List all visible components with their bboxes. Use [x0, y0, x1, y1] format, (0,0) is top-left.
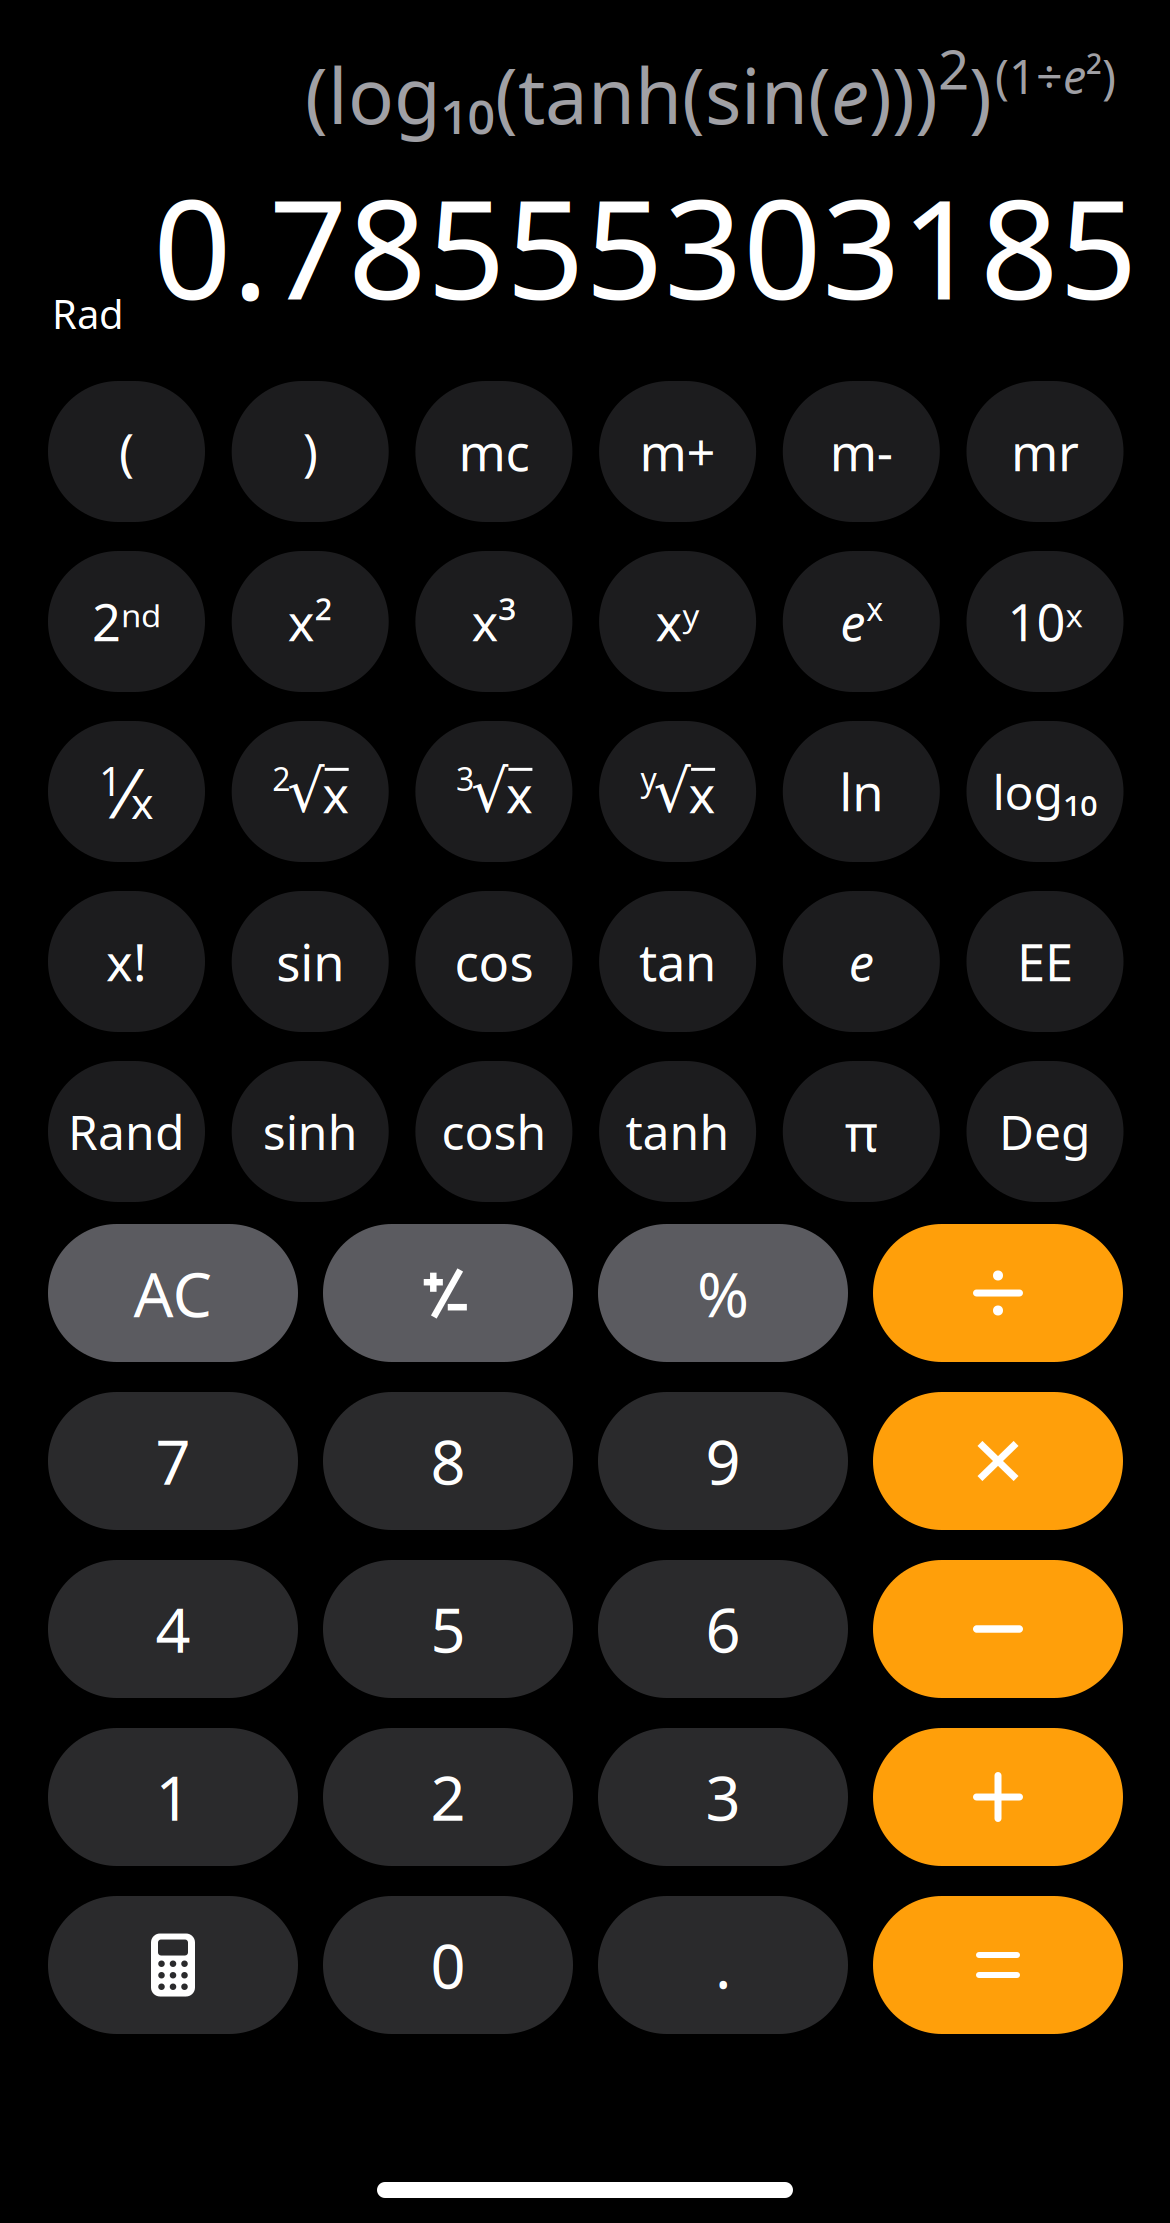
- button[interactable]: mc: [415, 381, 572, 522]
- staticText: Rand: [68, 1100, 185, 1163]
- staticText: cosh: [441, 1100, 546, 1163]
- staticText: e: [849, 928, 874, 995]
- staticText: xʸ: [656, 588, 700, 655]
- button[interactable]: m+: [599, 381, 756, 522]
- button[interactable]: 6: [598, 1560, 848, 1698]
- staticText: m-: [830, 418, 893, 485]
- button[interactable]: mr: [966, 381, 1123, 522]
- button[interactable]: 4: [48, 1560, 298, 1698]
- button[interactable]: Equals: [873, 1896, 1123, 2034]
- staticText: ))): [869, 44, 938, 145]
- staticText: cos: [454, 928, 533, 995]
- staticText: 5: [430, 1588, 465, 1670]
- button[interactable]: x!: [48, 891, 205, 1032]
- staticText: m+: [640, 418, 716, 485]
- staticText: %: [697, 1251, 749, 1335]
- staticText: ²): [1086, 45, 1116, 107]
- button[interactable]: tan: [599, 891, 756, 1032]
- staticText: (1÷: [995, 45, 1063, 107]
- button[interactable]: Multiply: [873, 1392, 1123, 1530]
- staticText: 3: [456, 757, 474, 800]
- staticText: 1: [99, 754, 122, 807]
- button[interactable]: e: [783, 891, 940, 1032]
- button[interactable]: 1: [48, 1728, 298, 1866]
- button[interactable]: ): [232, 381, 389, 522]
- staticText: sinh: [263, 1100, 358, 1163]
- button[interactable]: 2: [232, 721, 389, 862]
- staticText: e: [1063, 45, 1086, 107]
- staticText: x: [689, 760, 716, 827]
- staticText: Rad: [52, 287, 124, 340]
- staticText: y: [641, 757, 657, 800]
- button[interactable]: 3: [415, 721, 572, 862]
- staticText: 10ˣ: [1007, 588, 1082, 655]
- button[interactable]: log₁₀: [966, 721, 1123, 862]
- button[interactable]: 0: [323, 1896, 573, 2034]
- button[interactable]: (: [48, 381, 205, 522]
- button[interactable]: EE: [966, 891, 1123, 1032]
- button[interactable]: 9: [598, 1392, 848, 1530]
- button[interactable]: y: [599, 721, 756, 862]
- button[interactable]: x²: [232, 551, 389, 692]
- button[interactable]: ln: [783, 721, 940, 862]
- button[interactable]: sinh: [232, 1061, 389, 1202]
- staticText: ln: [839, 758, 883, 825]
- button[interactable]: m-: [783, 381, 940, 522]
- button[interactable]: tanh: [599, 1061, 756, 1202]
- staticText: x: [322, 760, 349, 827]
- button[interactable]: xʸ: [599, 551, 756, 692]
- staticText: mr: [1011, 418, 1079, 485]
- button[interactable]: 5: [323, 1560, 573, 1698]
- button[interactable]: e: [783, 551, 940, 692]
- staticText: √: [654, 758, 691, 825]
- staticText: 4: [155, 1588, 190, 1670]
- staticText: x: [131, 774, 154, 831]
- button[interactable]: sin: [232, 891, 389, 1032]
- staticText: x³: [471, 588, 516, 655]
- button[interactable]: 3: [598, 1728, 848, 1866]
- staticText: mc: [458, 418, 529, 485]
- button[interactable]: Divide: [873, 1224, 1123, 1362]
- staticText: x: [506, 760, 533, 827]
- button[interactable]: Minus: [873, 1560, 1123, 1698]
- staticText: x²: [288, 588, 333, 655]
- staticText: 7: [155, 1420, 190, 1502]
- button[interactable]: x³: [415, 551, 572, 692]
- staticText: 3: [705, 1756, 740, 1838]
- button[interactable]: Plus: [873, 1728, 1123, 1866]
- button[interactable]: Deg: [966, 1061, 1123, 1202]
- button[interactable]: cos: [415, 891, 572, 1032]
- staticText: x!: [106, 928, 147, 995]
- button[interactable]: Basic calculator: [48, 1896, 298, 2034]
- button[interactable]: 7: [48, 1392, 298, 1530]
- button[interactable]: %: [598, 1224, 848, 1362]
- button[interactable]: Rand: [48, 1061, 205, 1202]
- staticText: ): [303, 418, 318, 485]
- staticText: AC: [133, 1251, 212, 1335]
- button[interactable]: 8: [323, 1392, 573, 1530]
- button[interactable]: 1: [48, 721, 205, 862]
- staticText: (log₁₀(tanh(sin(: [305, 44, 831, 145]
- staticText: √: [471, 758, 508, 825]
- staticText: 2: [430, 1756, 465, 1838]
- button[interactable]: 10ˣ: [966, 551, 1123, 692]
- button[interactable]: 2: [323, 1728, 573, 1866]
- staticText: π: [845, 1098, 878, 1165]
- staticText: 6: [705, 1588, 740, 1670]
- button[interactable]: Toggle sign: [323, 1224, 573, 1362]
- staticText: 1: [155, 1756, 190, 1838]
- staticText: 2: [938, 32, 969, 105]
- staticText: ): [969, 44, 992, 145]
- button[interactable]: π: [783, 1061, 940, 1202]
- staticText: (: [119, 418, 134, 485]
- staticText: sin: [276, 928, 344, 995]
- button[interactable]: .: [598, 1896, 848, 2034]
- staticText: 9: [705, 1420, 740, 1502]
- button[interactable]: 2ⁿᵈ: [48, 551, 205, 692]
- button[interactable]: AC: [48, 1224, 298, 1362]
- staticText: x: [866, 587, 883, 630]
- staticText: .: [715, 1924, 731, 2006]
- staticText: tanh: [626, 1100, 730, 1163]
- staticText: EE: [1017, 928, 1073, 995]
- button[interactable]: cosh: [415, 1061, 572, 1202]
